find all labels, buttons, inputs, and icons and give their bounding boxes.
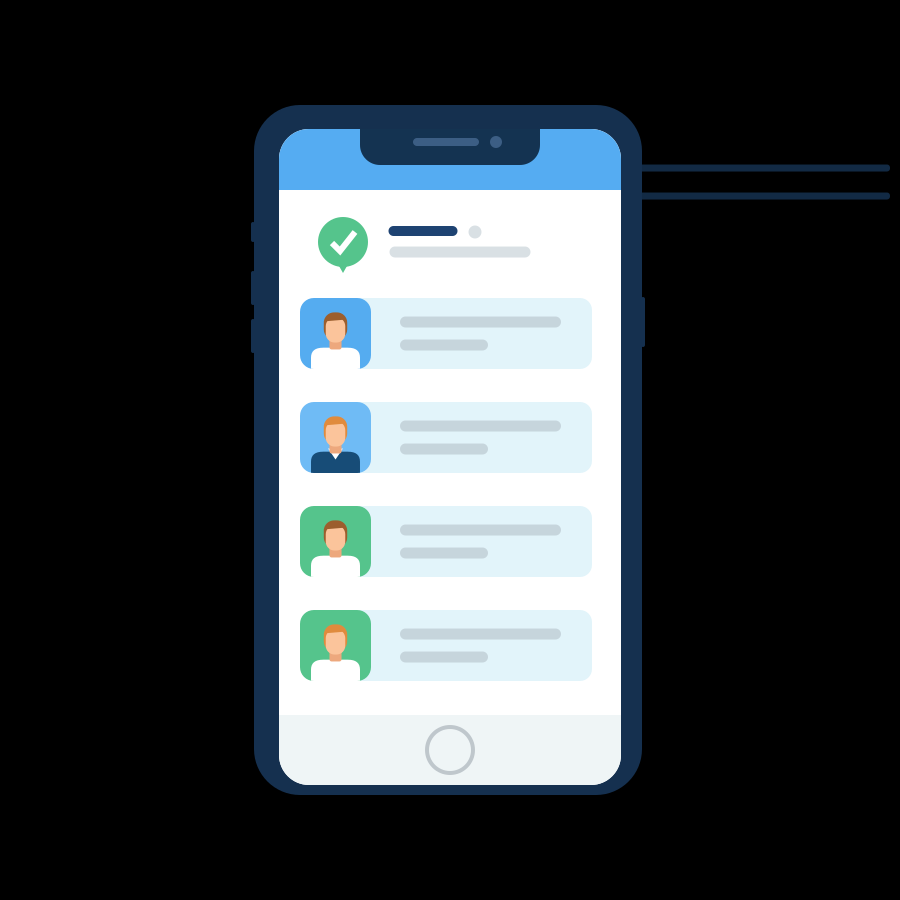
button[interactable]: Contact 2 [300, 402, 612, 473]
button[interactable]: Contact 3 [300, 506, 612, 577]
button[interactable]: Contact 1 [300, 298, 612, 369]
button[interactable]: Contact 4 [300, 610, 612, 681]
